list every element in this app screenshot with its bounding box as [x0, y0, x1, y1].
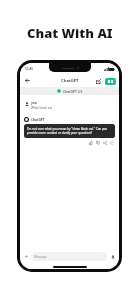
staticText: ChatGPT 3.5	[63, 89, 83, 93]
button[interactable]: Share	[102, 140, 107, 145]
button[interactable]: Dislike	[95, 140, 100, 145]
button[interactable]: Voice input	[109, 253, 116, 260]
staticText: you	[31, 101, 37, 105]
staticText: Message	[34, 255, 47, 259]
staticText: 12:45	[25, 67, 34, 71]
button[interactable]: Upgrade	[105, 78, 116, 85]
button[interactable]: ChatGPT 3.5	[20, 87, 119, 95]
button[interactable]: Like	[88, 140, 93, 145]
staticText: ChatGPT	[61, 78, 79, 84]
button[interactable]: Attach	[23, 253, 29, 259]
staticText: Chat With AI	[27, 24, 113, 42]
button[interactable]: Message	[31, 252, 107, 261]
staticText: ChatGPT	[31, 118, 45, 122]
button[interactable]: Regenerate	[109, 140, 114, 145]
button[interactable]: Back	[23, 76, 32, 85]
staticText: What black cat	[31, 106, 53, 110]
button[interactable]: New chat	[94, 77, 102, 85]
staticText: I'm not sure what you mean by "show blac…	[27, 127, 112, 135]
